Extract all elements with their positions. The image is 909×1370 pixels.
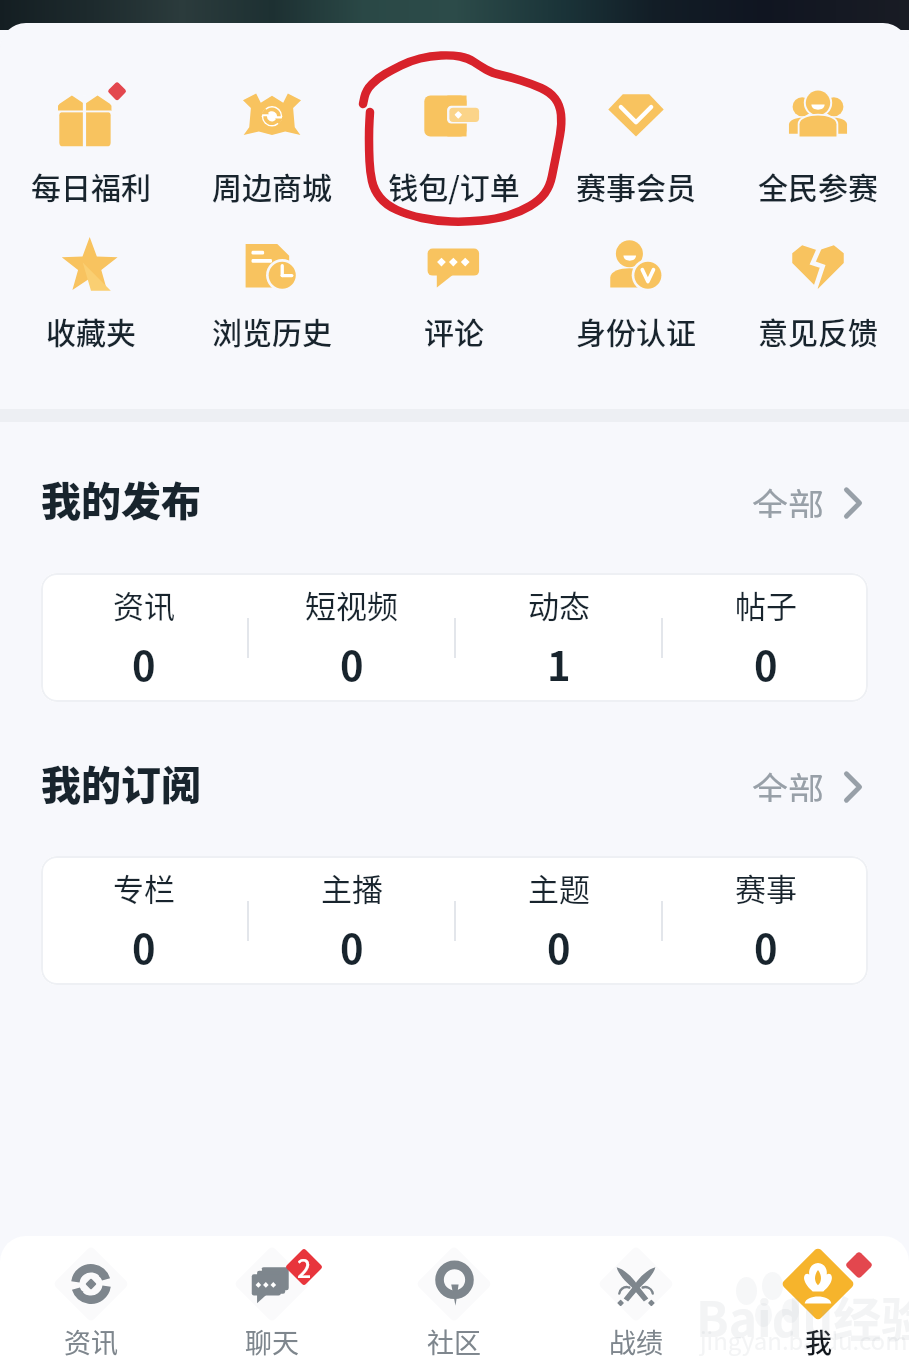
button[interactable]: 社区 bbox=[363, 1246, 545, 1361]
staticText: 全民参赛 bbox=[758, 164, 878, 207]
staticText: jingyan.baidu.com bbox=[700, 1322, 908, 1357]
staticText: 0 bbox=[340, 635, 364, 693]
button[interactable]: 每日福利 bbox=[0, 85, 181, 207]
staticText: 1 bbox=[547, 635, 571, 693]
staticText: 收藏夹 bbox=[46, 309, 136, 352]
staticText: 动态 bbox=[528, 582, 590, 627]
staticText: Baidu经验 bbox=[696, 1281, 909, 1351]
staticText: 我的订阅 bbox=[41, 754, 201, 810]
staticText: 主播 bbox=[321, 865, 383, 910]
staticText: 0 bbox=[340, 918, 364, 976]
staticText: 我 bbox=[805, 1322, 832, 1361]
staticText: 资讯 bbox=[113, 582, 175, 627]
button[interactable]: 短视频 bbox=[249, 582, 454, 693]
other: 战绩 bbox=[614, 1262, 658, 1306]
button[interactable]: 意见反馈 bbox=[727, 230, 909, 352]
staticText: 钱包/订单 bbox=[388, 164, 520, 207]
button[interactable]: 战绩 bbox=[545, 1246, 727, 1361]
staticText: 全部 bbox=[752, 762, 825, 802]
staticText: 0 bbox=[132, 635, 156, 693]
staticText: 评论 bbox=[424, 309, 484, 352]
other: 聊天 bbox=[250, 1262, 294, 1306]
button[interactable]: 浏览历史 bbox=[181, 230, 363, 352]
button[interactable]: 主播 bbox=[249, 865, 454, 976]
staticText: 意见反馈 bbox=[758, 309, 878, 352]
staticText: 社区 bbox=[427, 1322, 481, 1361]
staticText: 主题 bbox=[528, 865, 590, 910]
staticText: 聊天 bbox=[245, 1322, 299, 1361]
button[interactable]: 主题 bbox=[456, 865, 661, 976]
staticText: 0 bbox=[547, 918, 571, 976]
staticText: 0 bbox=[754, 918, 778, 976]
button[interactable]: 我 bbox=[727, 1246, 909, 1361]
button[interactable]: 专栏 bbox=[41, 865, 247, 976]
button[interactable]: 聊天 bbox=[181, 1246, 363, 1361]
button[interactable]: 身份认证 bbox=[545, 230, 727, 352]
button[interactable]: 动态 bbox=[456, 582, 661, 693]
staticText: 身份认证 bbox=[576, 309, 696, 352]
button[interactable]: 赛事会员 bbox=[545, 85, 727, 207]
other: 我 bbox=[780, 1246, 856, 1322]
other: 资讯 bbox=[70, 1263, 112, 1305]
button[interactable]: 帖子 bbox=[663, 582, 868, 693]
button[interactable]: 周边商城 bbox=[181, 85, 363, 207]
staticText: 0 bbox=[754, 635, 778, 693]
staticText: 赛事会员 bbox=[576, 164, 696, 207]
staticText: 全部 bbox=[752, 478, 825, 518]
staticText: 周边商城 bbox=[212, 164, 332, 207]
button[interactable]: 全部 bbox=[752, 754, 868, 810]
staticText: 我的发布 bbox=[41, 470, 201, 526]
staticText: 每日福利 bbox=[31, 164, 151, 207]
staticText: 短视频 bbox=[305, 582, 398, 627]
staticText: 资讯 bbox=[64, 1322, 118, 1361]
other: 社区 bbox=[434, 1264, 475, 1305]
button[interactable]: 全民参赛 bbox=[727, 85, 909, 207]
staticText: 战绩 bbox=[609, 1322, 663, 1361]
button[interactable]: 全部 bbox=[752, 470, 868, 526]
staticText: 赛事 bbox=[735, 865, 797, 910]
button[interactable]: 收藏夹 bbox=[0, 230, 181, 352]
button[interactable]: 评论 bbox=[363, 230, 545, 352]
staticText: 2 bbox=[297, 1249, 312, 1285]
staticText: 专栏 bbox=[113, 865, 175, 910]
staticText: 浏览历史 bbox=[212, 309, 332, 352]
button[interactable]: 资讯 bbox=[0, 1246, 181, 1361]
staticText: 0 bbox=[132, 918, 156, 976]
button[interactable]: 赛事 bbox=[663, 865, 868, 976]
button[interactable]: 资讯 bbox=[41, 582, 247, 693]
button[interactable]: 钱包/订单 bbox=[363, 85, 545, 207]
staticText: 帖子 bbox=[735, 582, 797, 627]
